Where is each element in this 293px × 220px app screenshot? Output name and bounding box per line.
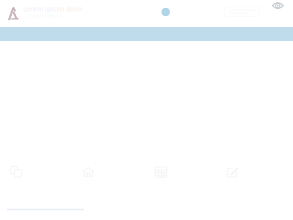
button[interactable]: Home bbox=[2, 2, 22, 24]
button[interactable]: Calendar bbox=[149, 160, 173, 184]
staticText: Lorem ipsum dolor bbox=[23, 5, 83, 13]
button[interactable]: Preview bbox=[271, 1, 285, 11]
